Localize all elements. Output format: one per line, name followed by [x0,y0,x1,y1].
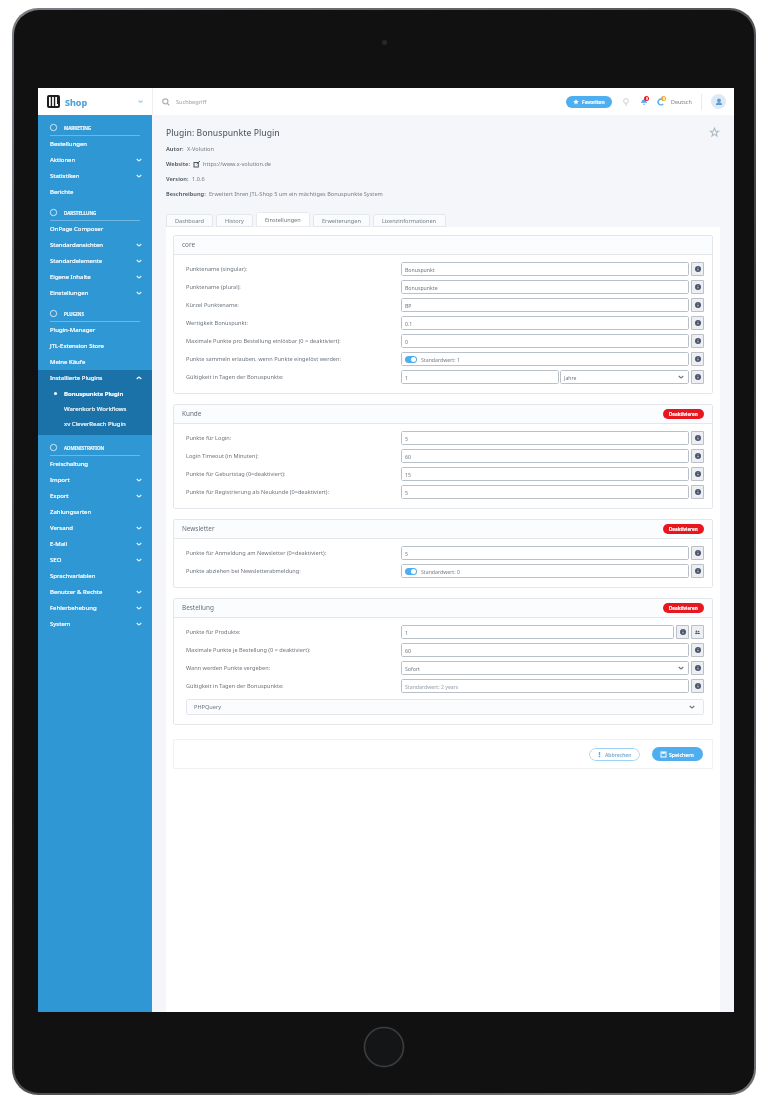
staticText: Punkte für Geburtstag (0=deaktiviert): [186,470,286,478]
button[interactable]: 0.1 [401,316,689,330]
button[interactable]: Eigene Inhalte [38,269,152,285]
button[interactable]: Info [691,316,704,330]
button[interactable]: 1 [401,370,559,384]
button[interactable]: Berichte [38,184,152,200]
staticText: Punkte für Login: [186,434,232,442]
staticText: Freischaltung [50,460,89,468]
button[interactable]: JTL-Extension Store [38,338,152,354]
staticText: Standardwert: 1 [421,356,460,363]
button[interactable]: Aktionen [38,152,152,168]
button[interactable]: Info [691,679,704,693]
button[interactable]: Favorit [709,127,720,138]
button[interactable]: Export [38,488,152,504]
button[interactable]: SEO [38,552,152,568]
button[interactable]: 5 [401,485,689,499]
button[interactable]: Standardwert: 1 [401,352,689,366]
button[interactable]: Info [691,467,704,481]
button[interactable]: Info [691,643,704,657]
staticText: Newsletter [182,524,215,533]
button[interactable]: Info [691,262,704,276]
staticText: Bestellung [182,603,214,612]
button[interactable]: PHPQuery [186,699,704,715]
button[interactable]: 60 [401,449,689,463]
button[interactable]: Dashboard [166,214,213,227]
button[interactable]: 5 [401,431,689,445]
button[interactable]: Info [691,334,704,348]
button[interactable]: Sprachvariablen [38,568,152,584]
button[interactable]: Shop [38,88,152,115]
button[interactable]: Versand [38,520,152,536]
staticText: Warenkorb Workflows [64,405,127,413]
staticText: Export [50,492,69,500]
button[interactable]: Bonuspunkt [401,262,689,276]
button[interactable]: Deaktivieren [663,409,704,419]
button[interactable]: Favoriten [566,96,612,108]
button[interactable]: Statistiken [38,168,152,184]
button[interactable]: Freischaltung [38,456,152,472]
button[interactable]: Benachrichtigungen [655,96,666,107]
button[interactable]: Lizenzinformationen [373,214,446,227]
button[interactable]: Bestellungen [38,136,152,152]
button[interactable]: Speichern [652,747,703,761]
staticText: Meine Käufe [50,358,86,366]
staticText: Bonuspunkte [405,284,438,291]
button[interactable]: Info [691,661,704,675]
button[interactable]: Meine Käufe [38,354,152,370]
button[interactable]: Info [691,352,704,366]
button[interactable]: Einstellungen [256,212,310,227]
button[interactable]: Info [691,280,704,294]
staticText: PLUGINS [64,311,84,317]
button[interactable]: Info [691,449,704,463]
button[interactable]: Info [691,298,704,312]
staticText: 0.1 [405,320,413,327]
button[interactable]: Import [38,472,152,488]
button[interactable]: Info [691,564,704,578]
button[interactable]: OnPage Composer [38,221,152,237]
button[interactable]: Info [691,546,704,560]
button[interactable]: Deaktivieren [663,603,704,613]
staticText: Punkte für Registrierung als Neukunde (0… [186,488,330,496]
button[interactable]: Benutzer & Rechte [38,584,152,600]
staticText: Autor: [166,145,184,153]
button[interactable]: History [216,214,253,227]
button[interactable]: 1 [401,625,674,639]
button[interactable]: Zahlungsarten [38,504,152,520]
button[interactable]: Standardelemente [38,253,152,269]
button[interactable]: xv CleverReach Plugin [38,416,152,432]
button[interactable]: Einstellungen [38,285,152,301]
button[interactable]: Info [691,431,704,445]
staticText: ADMINISTRATION [64,445,105,451]
button[interactable]: Bonuspunkte [401,280,689,294]
button[interactable]: Fehlerbehebung [38,600,152,616]
button[interactable]: Info [691,370,704,384]
button[interactable]: Standardansichten [38,237,152,253]
button[interactable]: Kundengruppen [691,625,704,639]
button[interactable]: 60 [401,643,689,657]
button[interactable]: Standardwert: 0 [401,564,689,578]
button[interactable]: Info [676,625,689,639]
button[interactable]: Plugin-Manager [38,322,152,338]
button[interactable]: Erweiterungen [313,214,370,227]
button[interactable]: Jahre [560,370,689,384]
button[interactable]: Warenkorb Workflows [38,401,152,416]
staticText: E-Mail [50,540,68,548]
button[interactable]: 15 [401,467,689,481]
staticText: Eigene Inhalte [50,273,91,281]
button[interactable]: Installierte Plugins [38,370,152,386]
button[interactable]: System [38,616,152,632]
staticText: Punkte sammeln erlauben, wenn Punkte ein… [186,355,341,363]
button[interactable]: Info [691,485,704,499]
button[interactable]: BP [401,298,689,312]
button[interactable]: Standardwert: 2 years [401,679,689,693]
button[interactable]: Sofort [401,661,689,675]
button[interactable]: 0 [401,334,689,348]
button[interactable]: Bonuspunkte Plugin [38,386,152,401]
button[interactable]: E-Mail [38,536,152,552]
button[interactable]: Benachrichtigungen [638,96,649,107]
button[interactable]: 5 [401,546,689,560]
staticText: Wann werden Punkte vergeben: [186,664,271,672]
button[interactable]: Abbrechen [589,748,640,761]
button[interactable]: Standort [621,97,631,107]
button[interactable]: Deaktivieren [663,524,704,534]
button[interactable]: Benutzerkonto [711,94,726,109]
